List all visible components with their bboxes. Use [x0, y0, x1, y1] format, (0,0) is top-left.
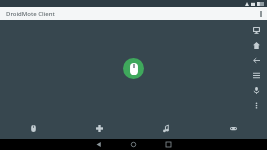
button[interactable]: Media [133, 117, 200, 139]
button[interactable]: More options [254, 7, 267, 20]
button[interactable]: Back [250, 54, 263, 67]
button[interactable]: Mouse pointer [123, 58, 144, 79]
button[interactable]: Display [250, 24, 263, 37]
button[interactable]: Home [128, 139, 139, 150]
button[interactable]: Mouse [0, 117, 66, 139]
button[interactable]: Recents [163, 139, 174, 150]
button[interactable]: Microphone [250, 84, 263, 97]
button[interactable]: D-pad [66, 117, 133, 139]
button[interactable]: Menu [250, 69, 263, 82]
button[interactable]: More [250, 99, 263, 112]
button[interactable]: Back [93, 139, 104, 150]
staticText: DroidMote Client [6, 10, 55, 18]
button[interactable]: Home [250, 39, 263, 52]
button[interactable]: Gamepad [200, 117, 267, 139]
